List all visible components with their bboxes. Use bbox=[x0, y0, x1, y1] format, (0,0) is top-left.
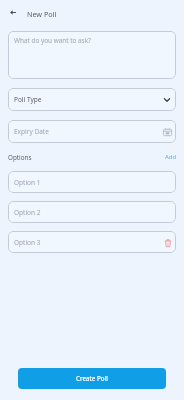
button[interactable]: Create Poll bbox=[18, 368, 166, 389]
staticText: Expiry Date bbox=[14, 127, 49, 136]
button[interactable]: Delete option bbox=[163, 238, 172, 247]
button[interactable]: Option 2 bbox=[8, 201, 176, 223]
button[interactable]: Poll Type bbox=[8, 88, 176, 111]
button[interactable]: Pick date bbox=[163, 127, 172, 136]
staticText: Create Poll bbox=[76, 374, 108, 383]
button[interactable]: Option 3 bbox=[8, 231, 176, 253]
staticText: Option 1 bbox=[14, 178, 41, 187]
staticText: What do you want to ask? bbox=[14, 36, 91, 45]
button[interactable]: Back bbox=[0, 0, 25, 26]
staticText: Options bbox=[8, 153, 32, 162]
staticText: Option 2 bbox=[14, 208, 41, 217]
button[interactable]: Expiry Date bbox=[8, 120, 176, 143]
button[interactable]: Add bbox=[164, 153, 176, 161]
staticText: Option 3 bbox=[14, 238, 41, 247]
staticText: New Poll bbox=[27, 9, 57, 19]
button[interactable]: What do you want to ask? bbox=[8, 31, 176, 79]
button[interactable]: Option 1 bbox=[8, 171, 176, 193]
staticText: Poll Type bbox=[14, 95, 42, 104]
staticText: Add bbox=[165, 153, 177, 161]
